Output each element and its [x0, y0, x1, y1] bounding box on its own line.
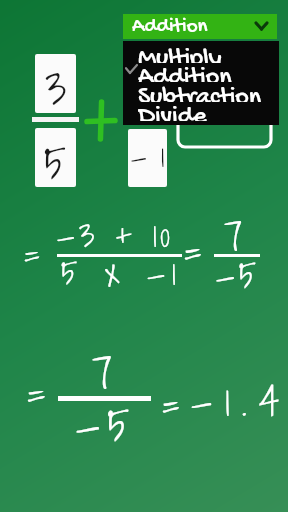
staticText: Divide: [138, 102, 207, 121]
staticText: —3 + 10: [57, 207, 174, 262]
button[interactable]: Denominator -1: [128, 129, 167, 187]
staticText: 3: [45, 54, 67, 110]
button[interactable]: Divide: [123, 99, 279, 118]
button[interactable]: Addition: [123, 60, 279, 79]
button[interactable]: Multiply: [123, 41, 279, 60]
staticText: =: [27, 357, 46, 424]
staticText: —5: [216, 246, 260, 304]
staticText: — 1: [131, 132, 165, 180]
staticText: Addition: [132, 15, 208, 40]
button[interactable]: Subtraction: [123, 80, 279, 99]
other: Open operation menu: [256, 23, 267, 29]
staticText: 5: [44, 128, 67, 184]
other: Plus: [87, 102, 115, 139]
button[interactable]: Numerator 3: [35, 54, 76, 113]
button[interactable]: Denominator 5: [35, 128, 76, 187]
staticText: Multiply: [138, 44, 222, 63]
staticText: 7: [224, 204, 243, 268]
staticText: =: [184, 216, 202, 280]
staticText: —5: [76, 387, 136, 461]
staticText: =—1.4: [162, 369, 288, 433]
staticText: Subtraction: [138, 83, 262, 102]
staticText: 5 x —1: [61, 245, 182, 300]
staticText: 7: [92, 337, 113, 408]
staticText: =: [24, 223, 40, 281]
button[interactable]: Addition: [123, 14, 277, 39]
staticText: Addition: [138, 63, 232, 82]
